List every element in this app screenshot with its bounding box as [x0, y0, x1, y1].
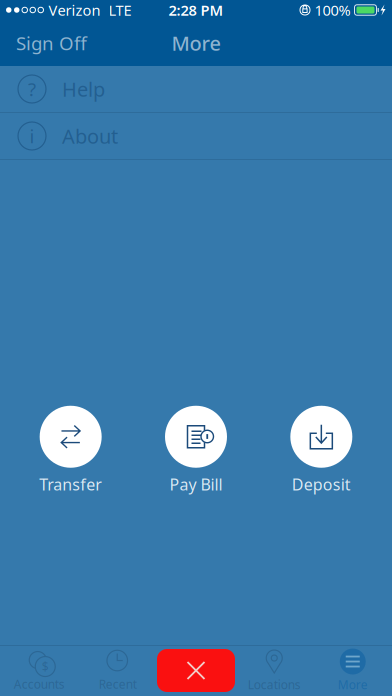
staticText: More [171, 30, 220, 56]
staticText: About [62, 123, 118, 149]
button[interactable]: Close [157, 649, 235, 692]
staticText: More [338, 676, 368, 692]
staticText: Sign Off [16, 31, 87, 55]
button[interactable]: Sign Off [0, 20, 103, 66]
button[interactable]: i [0, 113, 392, 159]
staticText: Recent [99, 676, 137, 692]
button[interactable]: $ [0, 645, 78, 695]
staticText: 2:28 PM [168, 0, 223, 20]
staticText: Verizon [48, 0, 100, 20]
staticText: ? [28, 77, 36, 101]
button[interactable]: Locations [235, 645, 313, 695]
button[interactable]: Transfer [39, 406, 102, 495]
staticText: Pay Bill [169, 474, 222, 495]
staticText: $ [42, 659, 49, 674]
staticText: Help [62, 76, 105, 102]
staticText: Locations [248, 676, 301, 692]
staticText: 100% [314, 0, 350, 20]
staticText: Deposit [292, 474, 351, 495]
button[interactable]: More [313, 645, 392, 695]
button[interactable]: ? [0, 66, 392, 112]
staticText: LTE [108, 0, 131, 20]
button[interactable]: Recent [78, 645, 157, 695]
button[interactable]: Pay Bill [165, 406, 227, 495]
staticText: Transfer [39, 474, 102, 495]
button[interactable]: Deposit [290, 406, 352, 495]
staticText: i [29, 124, 34, 148]
staticText: Accounts [14, 676, 65, 692]
